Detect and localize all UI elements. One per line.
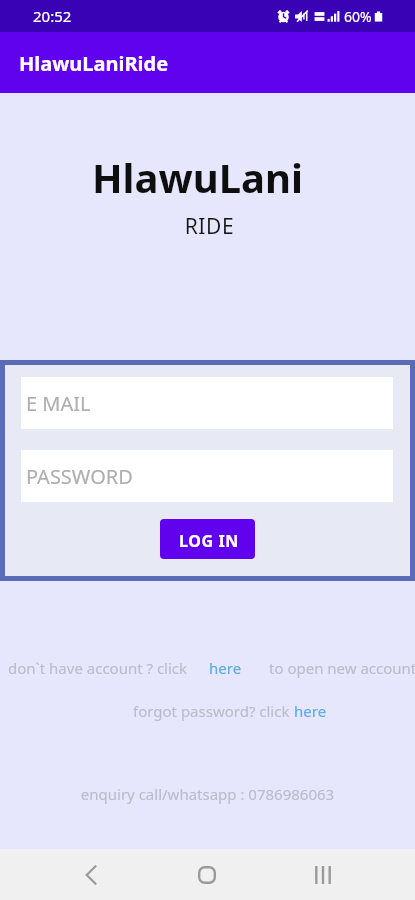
staticText: RIDE bbox=[2, 212, 415, 241]
staticText: HlawuLani bbox=[0, 150, 405, 204]
button[interactable]: Home bbox=[171, 849, 243, 900]
button[interactable]: E MAIL bbox=[21, 377, 393, 429]
staticText: LOG IN bbox=[179, 530, 239, 552]
button[interactable]: Recent apps bbox=[287, 849, 359, 900]
staticText: forgot password? click bbox=[133, 701, 290, 721]
staticText: PASSWORD bbox=[26, 463, 133, 490]
staticText: here bbox=[294, 701, 327, 721]
staticText: to open new account bbox=[269, 658, 415, 678]
staticText: 20:52 bbox=[33, 6, 72, 26]
staticText: E MAIL bbox=[26, 390, 91, 417]
staticText: don`t have account ? click bbox=[8, 658, 188, 678]
button[interactable]: here bbox=[204, 655, 246, 681]
staticText: enquiry call/whatsapp : 0786986063 bbox=[0, 784, 415, 804]
button[interactable]: PASSWORD bbox=[21, 450, 393, 502]
button[interactable]: Back bbox=[55, 849, 127, 900]
staticText: 60% bbox=[344, 7, 372, 26]
staticText: HlawuLaniRide bbox=[19, 50, 169, 77]
button[interactable]: LOG IN bbox=[160, 519, 255, 559]
staticText: here bbox=[209, 658, 242, 678]
button[interactable]: here bbox=[289, 698, 331, 724]
